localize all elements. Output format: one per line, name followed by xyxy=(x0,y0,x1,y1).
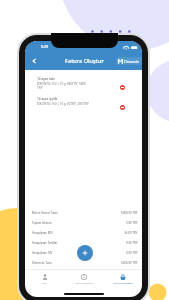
staticText: Hesaplanan KDV xyxy=(32,231,53,235)
button[interactable]: Remove xyxy=(120,85,125,90)
button[interactable]: Alıcı xyxy=(25,270,64,287)
staticText: Mal ve Hizmet Tutarı xyxy=(32,211,58,215)
button[interactable]: Back xyxy=(27,51,41,70)
staticText: Mal ve Hizmetler xyxy=(113,281,133,284)
staticText: Hesaplanan Tevkifat xyxy=(32,241,58,245)
staticText: 14 ayar işçilik xyxy=(37,97,58,101)
button[interactable]: 14 ayar işçilik xyxy=(25,97,142,116)
staticText: 14 ayar takı xyxy=(37,77,55,81)
staticText: 0.00 TRY xyxy=(126,251,138,255)
staticText: Ödenecek Tutar xyxy=(32,261,52,265)
staticText: Alıcı xyxy=(42,281,47,284)
staticText: Fatura Bilgileri xyxy=(75,281,93,284)
staticText: 6036.00 TRY xyxy=(121,261,138,265)
staticText: İSKONTO: %0 | 10 g 580TRY, 5800 TRY xyxy=(37,82,89,90)
button[interactable]: 14 ayar takı xyxy=(25,77,142,96)
staticText: 5:29 xyxy=(41,44,49,49)
staticText: 36.00 TRY xyxy=(124,231,138,235)
staticText: Toplam İskonto xyxy=(32,221,52,225)
staticText: Fatura Oluştur xyxy=(65,57,104,65)
button[interactable]: Remove xyxy=(120,105,125,110)
staticText: 0.00 TRY xyxy=(126,241,138,245)
button[interactable]: Add item xyxy=(77,245,93,261)
button[interactable]: Mal ve Hizmetler xyxy=(103,270,142,287)
staticText: 6000.00 TRY xyxy=(121,211,138,215)
staticText: 0.00 TRY xyxy=(126,221,138,225)
button[interactable]: Düzenle xyxy=(116,57,142,65)
staticText: İSKONTO: %0 | 10 g 20TRY, 200 TRY xyxy=(37,102,89,106)
button[interactable]: Fatura Bilgileri xyxy=(64,270,103,287)
staticText: Düzenle xyxy=(124,59,140,64)
staticText: Hesaplanan ÖİV xyxy=(32,251,53,255)
